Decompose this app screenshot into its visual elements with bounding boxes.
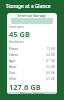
button[interactable]: Apps [9,58,55,64]
button[interactable]: Photos [9,46,55,52]
staticText: Videos [9,53,18,57]
button[interactable]: Storage at a Glance [0,0,64,13]
staticText: Other [9,77,17,81]
staticText: Music [9,65,17,69]
button[interactable]: Docs [9,70,55,76]
staticText: 6.3 GB [46,77,55,81]
staticText: Manage storage [20,92,44,94]
button[interactable]: Other [9,76,55,82]
staticText: 5.2 GB [46,65,55,69]
staticText: 45 GB [9,29,30,39]
staticText: Apps [9,59,16,63]
staticText: 8.1 GB [46,59,55,63]
staticText: Docs [9,71,16,75]
button[interactable]: Music [9,64,55,70]
staticText: Used space [9,25,24,29]
staticText: Storage at a Glance [6,3,51,10]
staticText: 127.6 GB [9,82,41,92]
staticText: 4.0 GB [46,71,55,75]
button[interactable]: Videos [9,52,55,58]
staticText: Photos [9,47,19,51]
staticText: Internal Storage [18,13,47,18]
staticText: Breakdown [9,40,24,44]
button[interactable]: Manage storage [7,92,57,94]
staticText: 9.4 GB [46,53,55,57]
staticText: 12 GB [47,47,55,51]
